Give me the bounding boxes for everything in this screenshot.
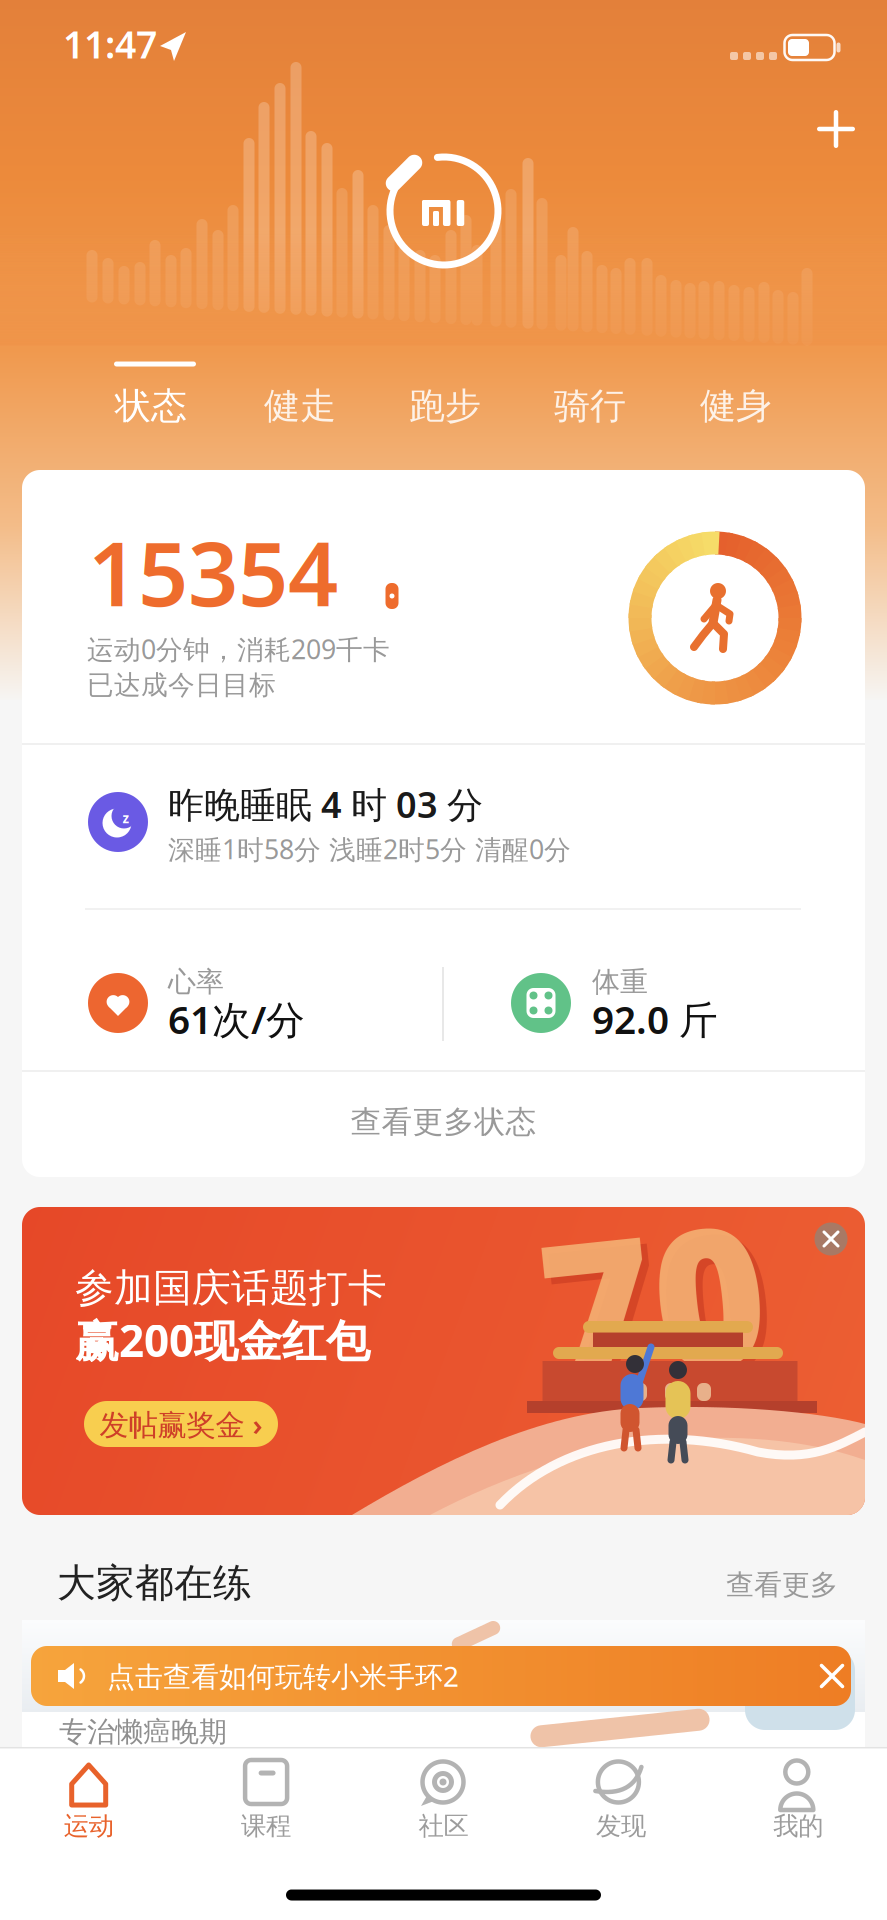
button[interactable]: 健走 <box>240 376 360 436</box>
staticText: 状态 <box>115 384 187 428</box>
staticText: 已达成今日目标 <box>87 669 276 701</box>
staticText: 深睡1时58分 浅睡2时5分 清醒0分 <box>168 831 571 867</box>
button[interactable]: 健身 <box>676 376 796 436</box>
staticText: 心率 <box>168 965 224 999</box>
staticText: 赢200现金红包 <box>75 1311 370 1369</box>
staticText: 健身 <box>700 384 772 428</box>
staticText: 跑步 <box>409 384 481 428</box>
button[interactable]: 点击查看如何玩转小米手环2 <box>31 1646 851 1706</box>
staticText: 70 <box>540 1171 766 1426</box>
staticText: 我的 <box>773 1810 823 1841</box>
staticText: 昨晚睡眠 4 时 03 分 <box>168 780 483 828</box>
button[interactable]: 状态 <box>91 376 211 436</box>
button[interactable]: 运动 <box>0 1747 177 1862</box>
staticText: 发现 <box>596 1810 646 1841</box>
staticText: 运动 <box>64 1810 114 1841</box>
button[interactable]: Close banner <box>808 1216 854 1262</box>
staticText: 健走 <box>264 384 336 428</box>
button[interactable]: 查看更多 <box>638 1560 838 1610</box>
button[interactable]: 课程 <box>178 1747 355 1862</box>
staticText: 11:47 <box>63 19 157 69</box>
staticText: 大家都在练 <box>57 1559 252 1607</box>
staticText: 社区 <box>418 1810 468 1841</box>
button[interactable]: 骑行 <box>530 376 650 436</box>
button[interactable]: 我的 <box>710 1747 887 1862</box>
button[interactable]: 社区 <box>355 1747 532 1862</box>
staticText: 骑行 <box>554 384 626 428</box>
button[interactable]: 查看更多状态 <box>243 1087 643 1157</box>
staticText: 点击查看如何玩转小米手环2 <box>107 1657 459 1695</box>
staticText: 15354 <box>88 514 338 630</box>
staticText: 61次/分 <box>168 993 305 1045</box>
staticText: z <box>122 809 129 827</box>
staticText: 查看更多状态 <box>350 1103 536 1141</box>
button[interactable]: Add <box>806 99 866 159</box>
staticText: 70 <box>547 1177 773 1432</box>
button[interactable]: Close tip <box>810 1654 853 1697</box>
staticText: 体重 <box>592 965 648 999</box>
staticText: 发帖赢奖金 › <box>99 1404 262 1443</box>
staticText: 专治懒癌晚期 <box>59 1715 227 1749</box>
staticText: 运动0分钟，消耗209千卡 <box>87 631 390 667</box>
staticText: 92.0 斤 <box>592 993 718 1045</box>
staticText: 课程 <box>241 1810 291 1841</box>
staticText: 参加国庆话题打卡 <box>75 1264 387 1312</box>
button[interactable]: 跑步 <box>385 376 505 436</box>
button[interactable]: 发现 <box>532 1747 709 1862</box>
staticText: 查看更多 <box>726 1568 838 1602</box>
button[interactable]: 发帖赢奖金 › <box>84 1401 278 1447</box>
